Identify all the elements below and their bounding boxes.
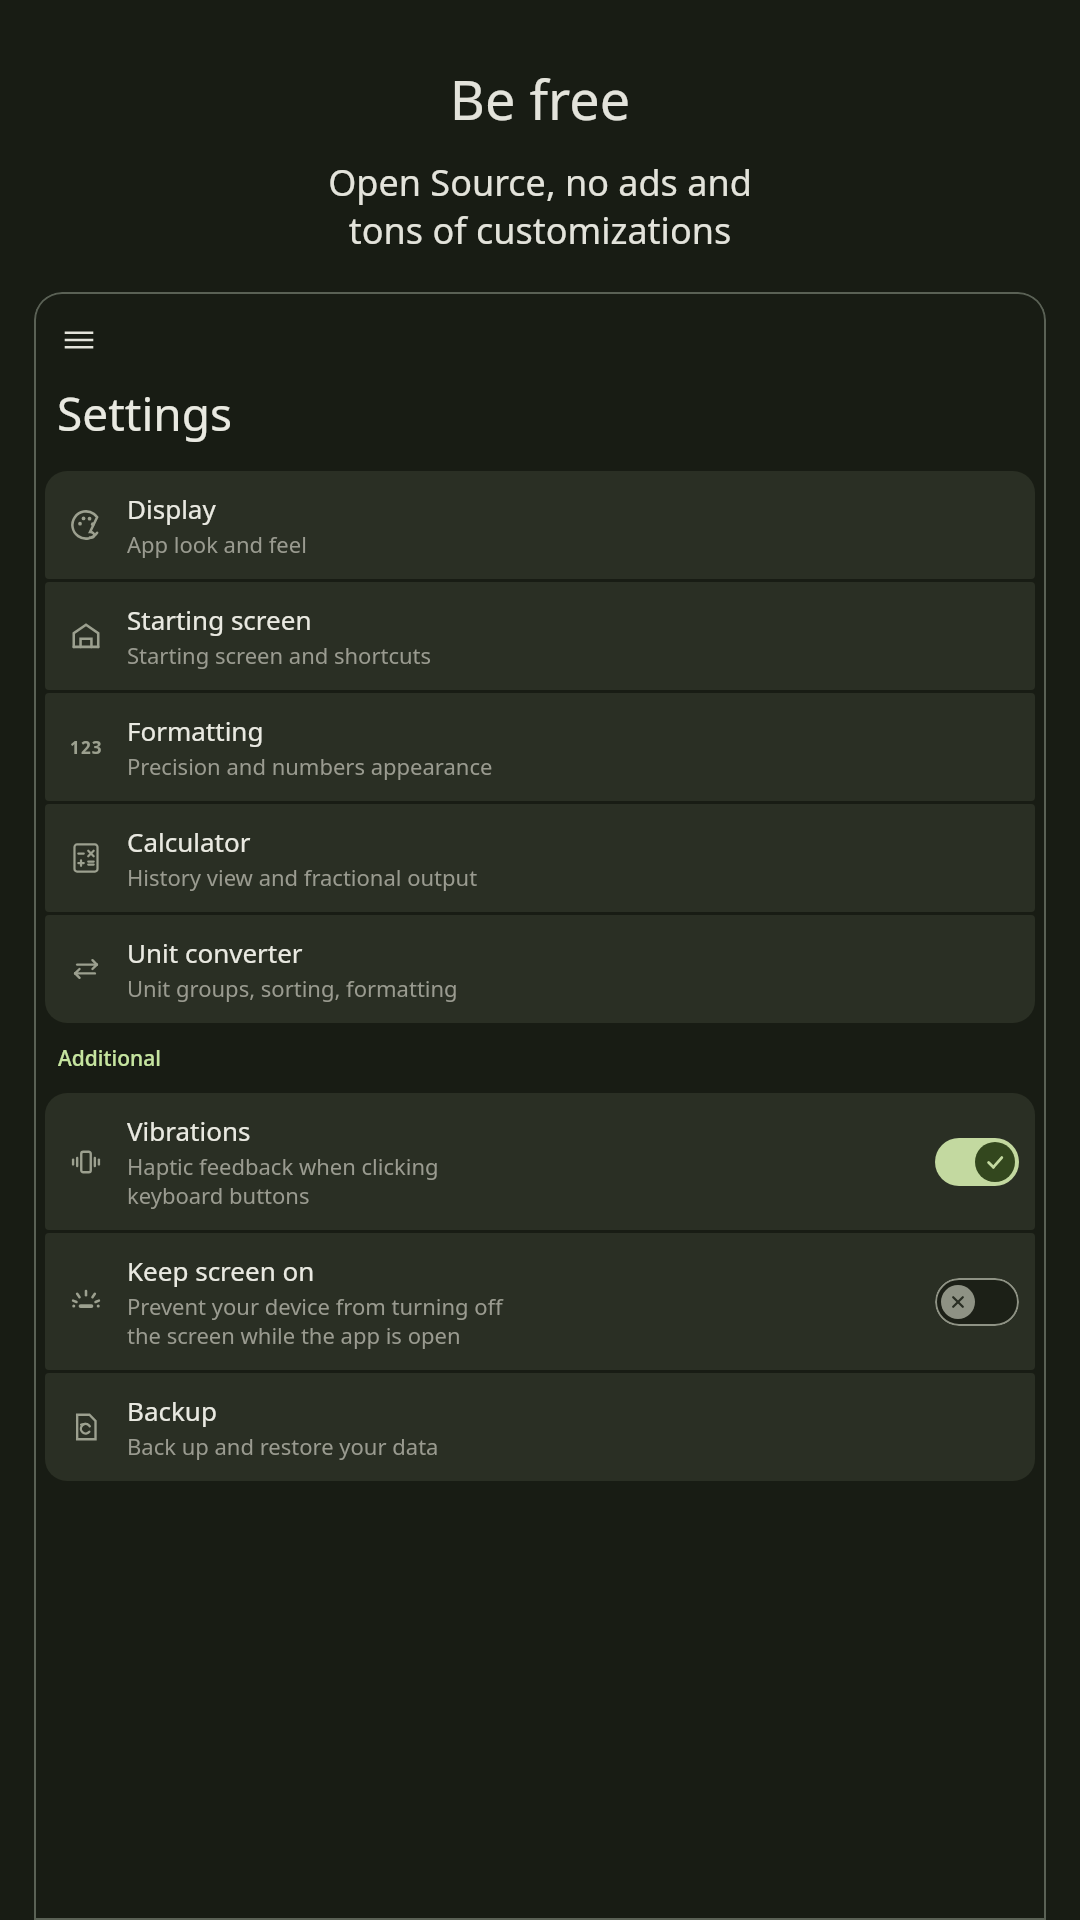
button[interactable]: 123 <box>45 693 1035 801</box>
button[interactable]: Keep screen on off <box>935 1278 1019 1326</box>
button[interactable]: Vibrations <box>45 1093 1035 1230</box>
button[interactable]: Display <box>45 471 1035 579</box>
staticText: Keep screen on <box>127 1253 315 1288</box>
button[interactable]: Open navigation menu <box>55 316 103 364</box>
staticText: Backup <box>127 1393 217 1428</box>
staticText: History view and fractional output <box>127 862 478 892</box>
staticText: Starting screen and shortcuts <box>127 640 432 670</box>
staticText: Additional <box>58 1044 161 1073</box>
staticText: Starting screen <box>127 602 312 637</box>
staticText: Settings <box>57 382 233 445</box>
staticText: Formatting <box>127 713 264 748</box>
staticText: Haptic feedback when clicking keyboard b… <box>127 1151 439 1210</box>
staticText: Unit converter <box>127 935 303 970</box>
button[interactable]: Calculator <box>45 804 1035 912</box>
staticText: Back up and restore your data <box>127 1431 439 1461</box>
staticText: Calculator <box>127 824 251 859</box>
button[interactable]: Backup <box>45 1373 1035 1481</box>
button[interactable]: Vibrations on <box>935 1138 1019 1186</box>
button[interactable]: Keep screen on <box>45 1233 1035 1370</box>
staticText: Prevent your device from turning off the… <box>127 1291 503 1350</box>
staticText: Display <box>127 491 216 526</box>
staticText: 123 <box>70 736 103 759</box>
staticText: Precision and numbers appearance <box>127 751 493 781</box>
staticText: Open Source, no ads and tons of customiz… <box>26 158 1054 254</box>
staticText: Vibrations <box>127 1113 251 1148</box>
staticText: Be free <box>0 62 1080 136</box>
staticText: Unit groups, sorting, formatting <box>127 973 458 1003</box>
staticText: App look and feel <box>127 529 307 559</box>
button[interactable]: Unit converter <box>45 915 1035 1023</box>
button[interactable]: Starting screen <box>45 582 1035 690</box>
